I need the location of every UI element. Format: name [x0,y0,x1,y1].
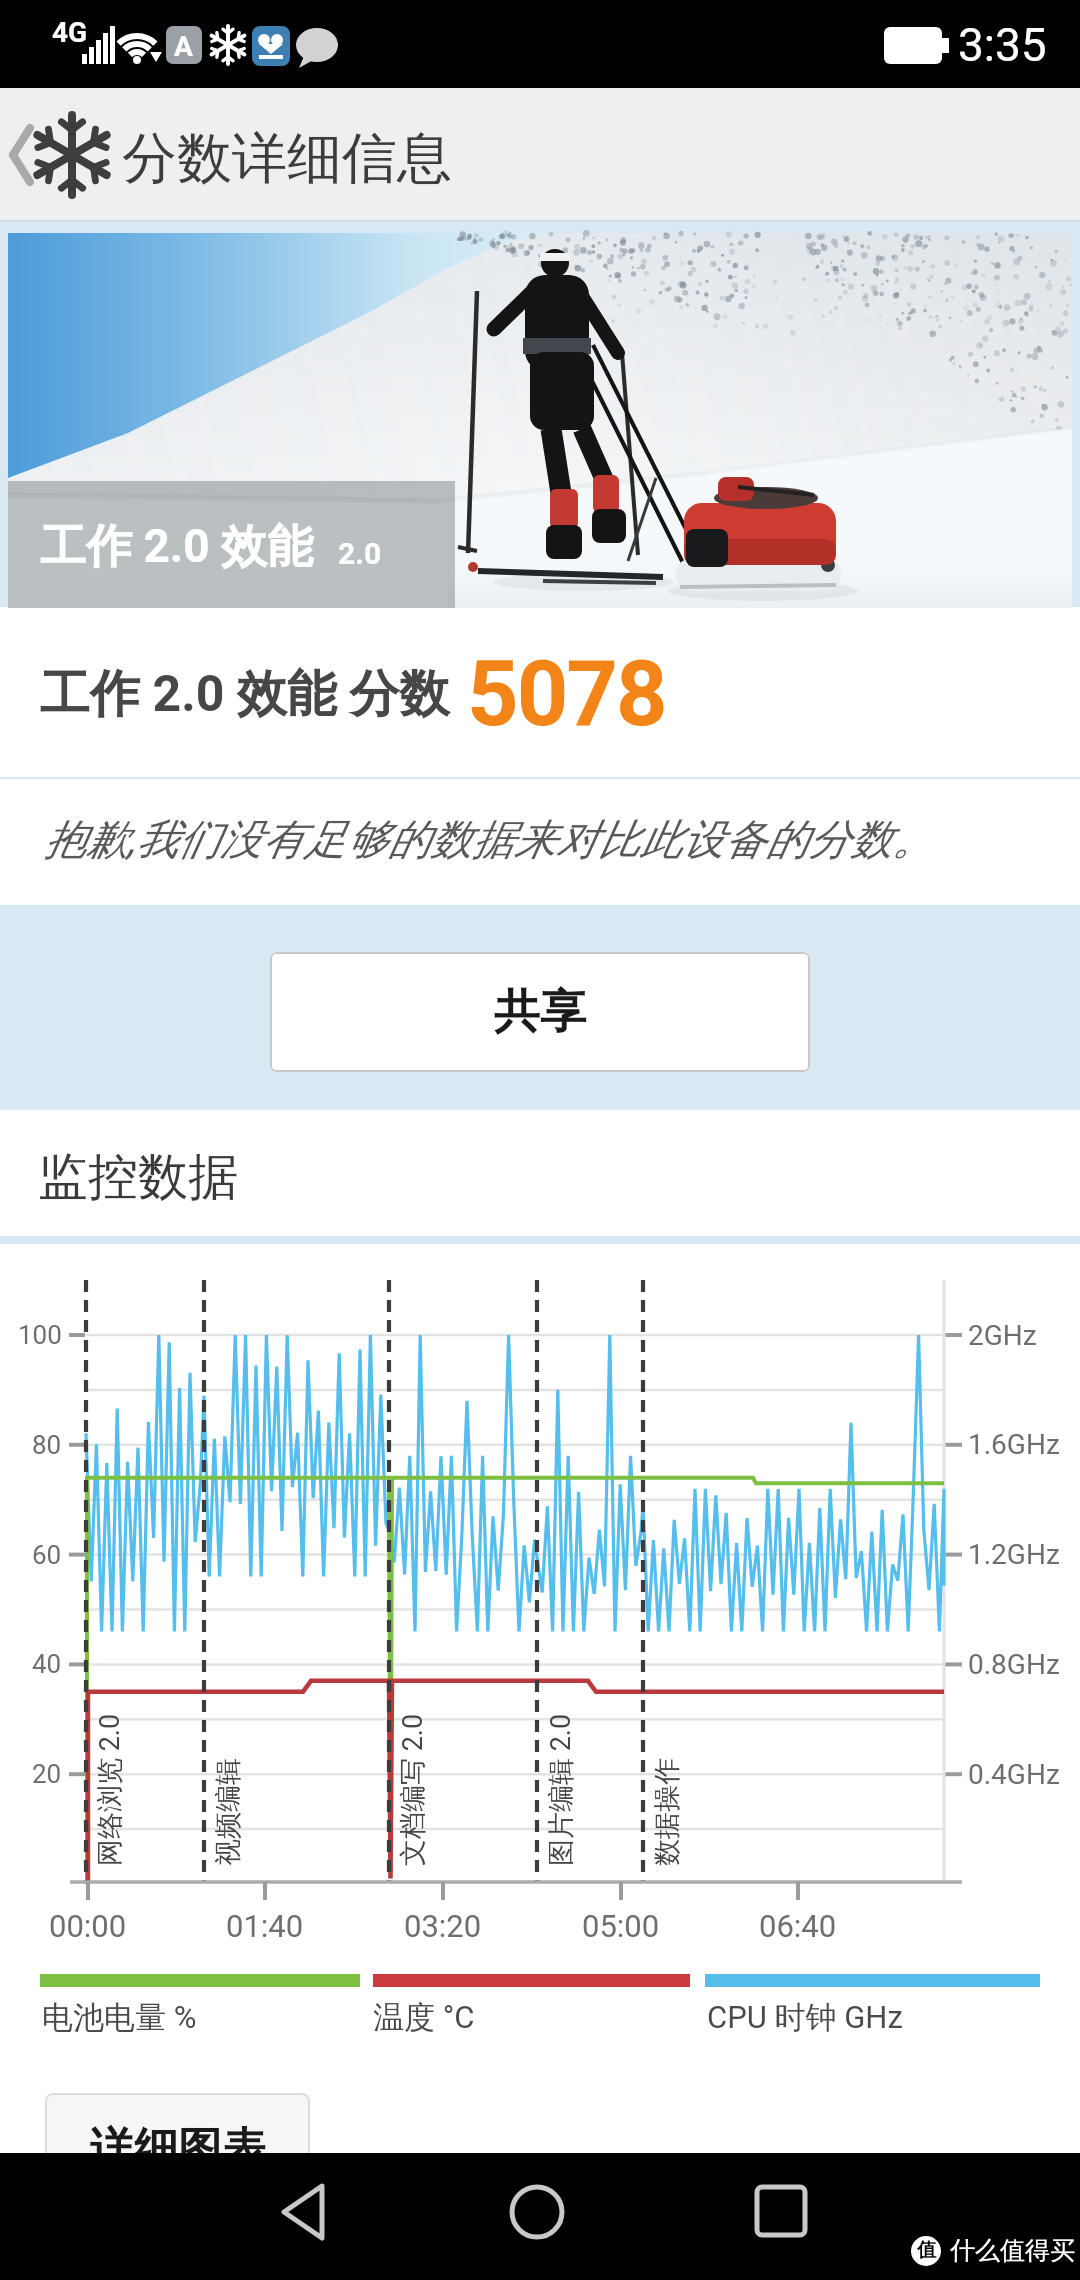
staticText: 电池电量 % [42,1998,197,2037]
button[interactable] [0,88,48,222]
button[interactable]: 详细图表 [45,2093,310,2205]
staticText: 共享 [494,983,586,1041]
staticText: 温度 °C [373,1998,475,2037]
staticText: 工作 2.0 效能 [40,518,314,576]
staticText: 工作 2.0 效能 分数 [40,663,450,726]
button[interactable] [490,2166,590,2266]
button[interactable]: 共享 [270,952,810,1072]
staticText: 5078 [467,642,666,747]
staticText: 2.0 [338,536,382,571]
button[interactable] [253,2166,353,2266]
staticText: 4G [52,16,88,49]
staticText: CPU 时钟 GHz [707,1998,903,2037]
staticText: 3:35 [958,18,1047,72]
button[interactable] [732,2166,832,2266]
staticText: 分数详细信息 [122,124,452,193]
staticText: 什么值得买 [950,2235,1075,2266]
staticText: 详细图表 [90,2122,266,2177]
staticText: 抱歉,我们没有足够的数据来对比此设备的分数。 [44,814,935,867]
staticText: A [174,30,193,63]
staticText: 监控数据 [38,1146,238,1209]
staticText: 值 [917,2238,936,2262]
